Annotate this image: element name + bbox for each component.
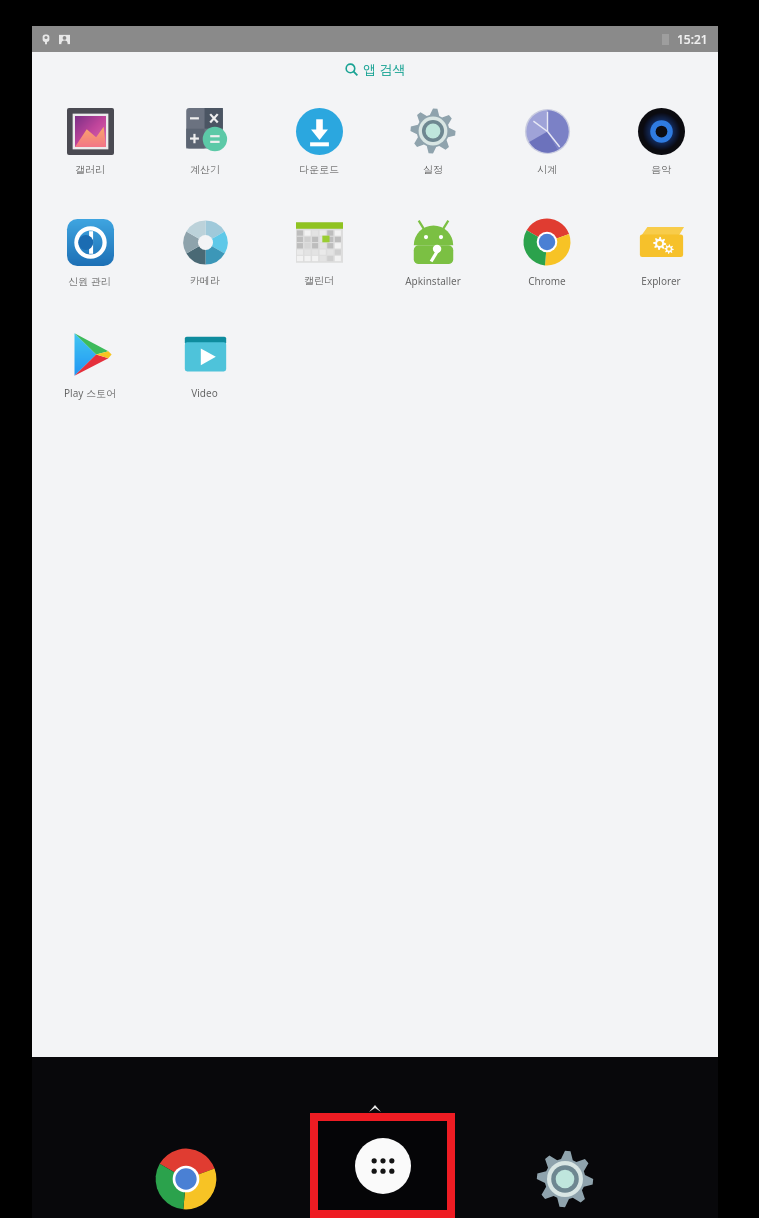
staticText: 시계: [537, 163, 557, 176]
staticText: Video: [191, 386, 218, 400]
button[interactable]: Chrome: [150, 1143, 222, 1215]
staticText: 앱 검색: [363, 60, 406, 78]
staticText: 갤러리: [75, 163, 105, 176]
staticText: 카메라: [190, 274, 220, 287]
staticText: 계산기: [190, 163, 220, 176]
button[interactable]: Play 스토어: [32, 326, 147, 404]
button[interactable]: 앱 검색: [331, 55, 420, 83]
button[interactable]: 신원 관리: [32, 214, 147, 292]
button[interactable]: 갤러리: [32, 103, 147, 180]
button[interactable]: 음악: [604, 103, 718, 180]
staticText: Apkinstaller: [405, 274, 461, 288]
staticText: 다운로드: [299, 163, 339, 176]
staticText: Explorer: [641, 274, 681, 288]
button[interactable]: Video: [147, 326, 262, 404]
button[interactable]: Explorer: [604, 214, 718, 292]
staticText: Chrome: [528, 274, 566, 288]
button[interactable]: 실정: [376, 103, 490, 180]
staticText: 실정: [423, 163, 443, 176]
staticText: 캘린더: [304, 274, 334, 287]
staticText: 음악: [651, 163, 671, 176]
button[interactable]: 캘린더: [262, 214, 376, 291]
staticText: 신원 관리: [68, 274, 111, 288]
staticText: 15:21: [677, 31, 708, 47]
staticText: Play 스토어: [64, 386, 116, 400]
button[interactable]: All apps: [318, 1121, 447, 1210]
button[interactable]: 다운로드: [262, 103, 376, 180]
button[interactable]: Chrome: [490, 214, 604, 292]
button[interactable]: 카메라: [147, 214, 262, 291]
button[interactable]: 시계: [490, 103, 604, 180]
button[interactable]: 계산기: [147, 103, 262, 180]
button[interactable]: Apkinstaller: [376, 214, 490, 292]
button[interactable]: Settings: [529, 1143, 601, 1215]
